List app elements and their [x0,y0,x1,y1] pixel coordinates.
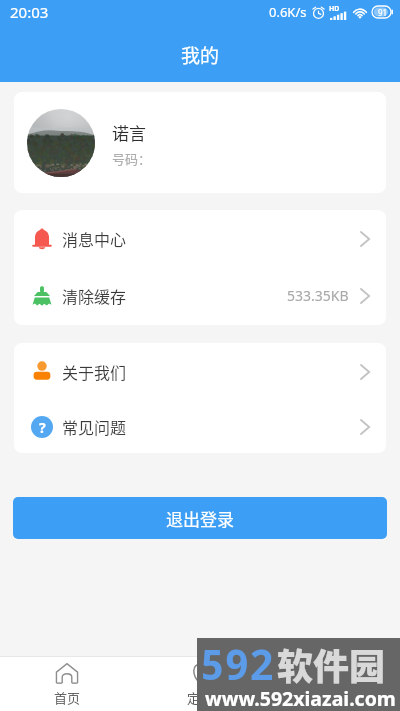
button[interactable]: 定位 [134,656,267,711]
button[interactable]: ? [14,400,386,453]
button[interactable]: 我的 [267,656,400,711]
button[interactable]: 清除缓存 [14,267,386,324]
staticText: 号码： [112,149,152,168]
staticText: 清除缓存 [62,284,127,307]
staticText: 0.6K/s [269,3,307,21]
staticText: 关于我们 [62,360,127,383]
staticText: www.592xiazai.com [205,685,400,711]
staticText: HD [329,4,340,14]
button[interactable]: 消息中心 [14,210,386,267]
staticText: 我的 [181,41,220,69]
button[interactable]: 首页 [0,656,134,711]
staticText: 91 [378,7,388,18]
staticText: 首页 [54,688,81,707]
button[interactable]: 退出登录 [13,497,387,539]
staticText: ? [39,418,46,437]
button[interactable]: 关于我们 [14,343,386,400]
staticText: 消息中心 [62,227,127,250]
staticText: 软件园 [277,638,386,690]
staticText: 592 [200,636,274,692]
staticText: 我的 [320,688,347,707]
staticText: 退出登录 [166,506,234,531]
staticText: 20:03 [10,2,49,22]
staticText: 定位 [187,688,214,707]
staticText: 诺言 [112,120,146,145]
staticText: 533.35KB [287,286,349,305]
staticText: 常见问题 [62,415,127,438]
button[interactable]: 个人资料 诺言 [14,92,386,193]
